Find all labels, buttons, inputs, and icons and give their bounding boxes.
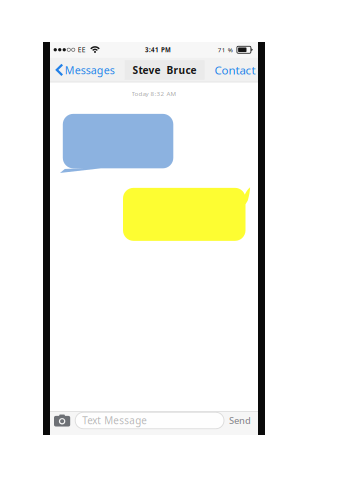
- button[interactable]: Send: [224, 414, 258, 427]
- button[interactable]: Contact: [210, 57, 258, 83]
- staticText: Steve Bruce: [133, 63, 197, 77]
- staticText: Today 8:32 AM: [131, 89, 176, 98]
- staticText: 3:41 PM: [145, 46, 171, 54]
- staticText: Send: [229, 414, 251, 427]
- staticText: Text Message: [82, 414, 147, 427]
- staticText: 71 %: [218, 46, 233, 54]
- button[interactable]: Text Message: [75, 412, 224, 429]
- button[interactable]: Messages: [50, 58, 119, 82]
- staticText: Contact: [214, 62, 255, 78]
- staticText: Messages: [65, 63, 115, 77]
- staticText: EE: [78, 45, 86, 54]
- button[interactable]: Camera: [50, 414, 75, 426]
